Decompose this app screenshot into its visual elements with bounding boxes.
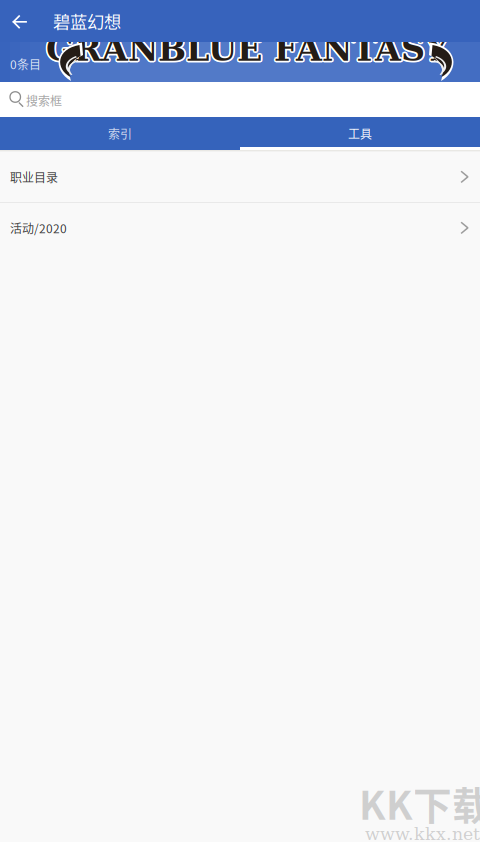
button[interactable]: Back [0,0,42,42]
staticText: GRANBLUE FANTASY [46,29,449,69]
staticText: GRANBLUE FANTASY [46,31,449,70]
button[interactable]: 索引 [0,117,240,150]
button[interactable]: 搜索框 [0,82,480,117]
staticText: GRANBLUE FANTASY [45,31,448,70]
staticText: GRANBLUE FANTASY [45,28,448,67]
staticText: www.kkx.net [365,824,480,842]
staticText: 职业目录 [10,168,58,186]
staticText: KK下载 [359,775,480,831]
button[interactable]: 职业目录 [0,152,480,202]
staticText: 活动/2020 [10,219,67,237]
staticText: GRANBLUE FANTASY [47,31,450,70]
staticText: GRANBLUE FANTASY [46,28,449,67]
staticText: GRANBLUE FANTASY [48,29,451,69]
staticText: 索引 [108,125,132,142]
staticText: GRANBLUE FANTASY [44,29,447,69]
staticText: 搜索框 [26,92,62,109]
staticText: グランブルーファンタジー [286,76,480,108]
staticText: 工具 [348,125,372,142]
button[interactable]: 工具 [240,117,480,150]
staticText: GRANBLUE FANTASY [47,28,450,67]
button[interactable]: 活动/2020 [0,203,480,253]
staticText: 0条目 [10,55,41,73]
staticText: 碧蓝幻想 [53,8,121,34]
